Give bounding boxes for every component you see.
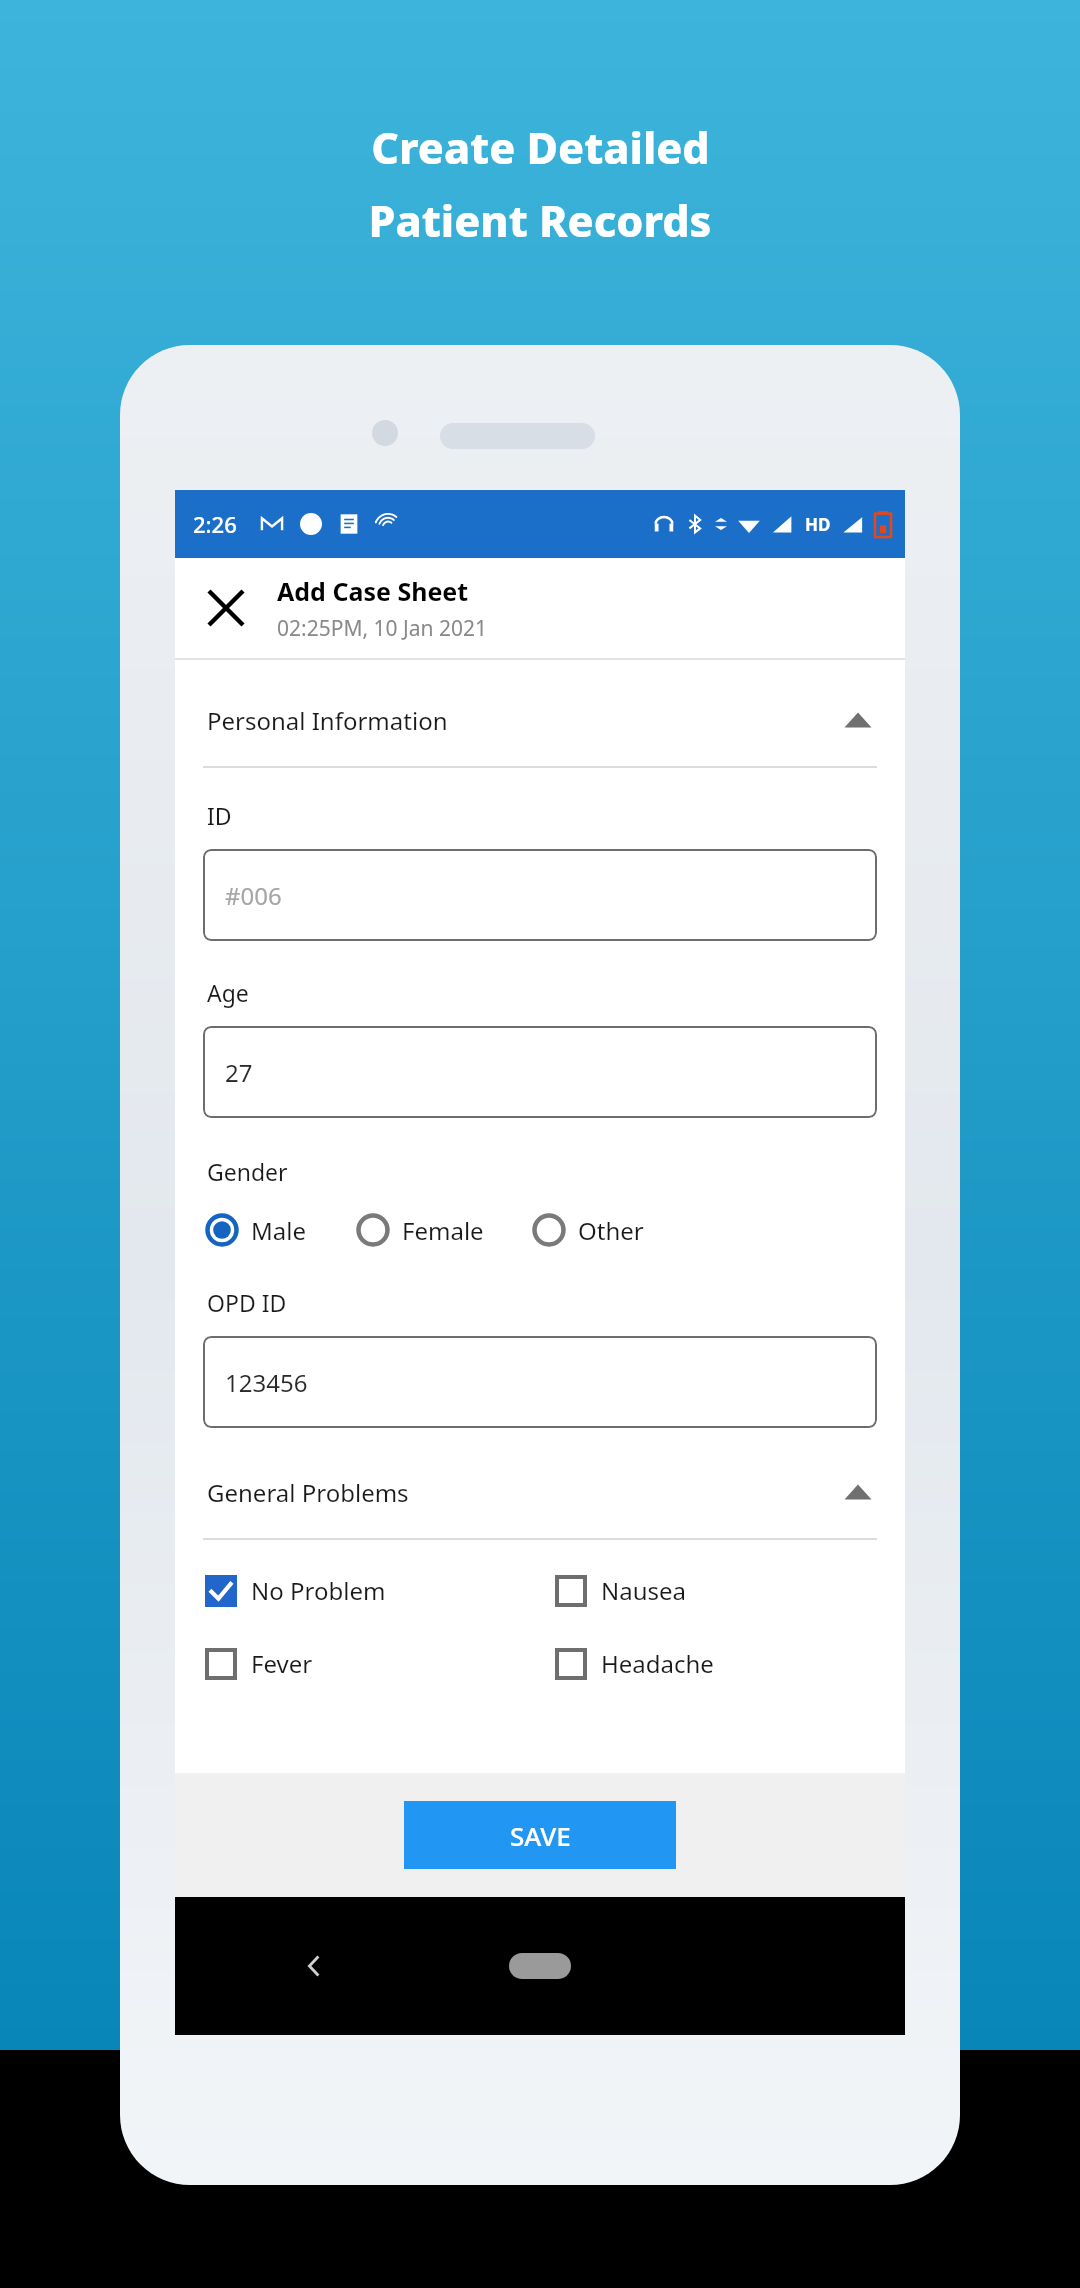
button[interactable]: Nausea [555, 1568, 905, 1613]
staticText: Gender [207, 1156, 288, 1187]
button[interactable]: No Problem [205, 1568, 555, 1613]
staticText: OPD ID [207, 1287, 287, 1318]
staticText: Nausea [601, 1574, 687, 1607]
staticText: Fever [251, 1647, 313, 1680]
staticText: Headache [601, 1647, 714, 1680]
staticText: #006 [225, 879, 282, 912]
staticText: 123456 [225, 1366, 308, 1399]
staticText: Other [578, 1214, 644, 1247]
staticText: Female [402, 1214, 484, 1247]
staticText: 02:25PM, 10 Jan 2021 [277, 614, 487, 643]
button[interactable]: Personal Information [175, 674, 905, 766]
staticText: SAVE [510, 1818, 571, 1853]
button[interactable]: Home [509, 1953, 571, 1979]
staticText: 27 [225, 1056, 253, 1089]
staticText: HD [805, 513, 831, 536]
staticText: Patient Records [368, 191, 712, 250]
button[interactable]: 123456 [203, 1336, 877, 1428]
button[interactable]: General Problems [175, 1446, 905, 1538]
button[interactable]: Female [356, 1207, 484, 1253]
staticText: General Problems [207, 1476, 409, 1509]
staticText: 2:26 [193, 509, 237, 539]
staticText: Age [207, 977, 249, 1008]
button[interactable]: Male [205, 1207, 306, 1253]
staticText: Add Case Sheet [277, 574, 469, 608]
button[interactable]: Fever [205, 1641, 555, 1686]
staticText: Personal Information [207, 704, 448, 737]
button[interactable]: SAVE [404, 1801, 676, 1869]
staticText: Create Detailed [371, 118, 710, 177]
staticText: No Problem [251, 1574, 386, 1607]
button[interactable]: #006 [203, 849, 877, 941]
button[interactable]: Close [191, 573, 261, 643]
staticText: ID [207, 800, 232, 831]
staticText: Male [251, 1214, 306, 1247]
button[interactable]: Back [285, 1936, 345, 1996]
button[interactable]: Other [532, 1207, 644, 1253]
button[interactable]: 27 [203, 1026, 877, 1118]
button[interactable]: Headache [555, 1641, 905, 1686]
